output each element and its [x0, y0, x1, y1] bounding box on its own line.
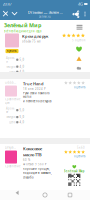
staticText: 5,0	[20, 108, 25, 112]
button[interactable]: Scan QR code	[63, 163, 86, 187]
staticText: Цена	[9, 70, 15, 73]
staticText: всё необходимое для сада	[4, 29, 41, 33]
staticText: оценить	[74, 154, 85, 158]
staticText: объём 75 мл	[22, 40, 41, 43]
staticText: Аромат	[6, 56, 15, 63]
button[interactable]: More	[81, 8, 89, 20]
button[interactable]: Recents	[65, 190, 75, 200]
staticText: 4G	[78, 1, 83, 7]
staticText: Цена	[9, 120, 15, 124]
staticText: Крем для рук	[22, 33, 48, 39]
staticText: Зелёный Мир	[64, 169, 85, 173]
button[interactable]: Home	[40, 190, 50, 200]
button[interactable]: Like	[76, 46, 82, 52]
staticText: 5,0	[20, 115, 25, 119]
staticText: оценить	[74, 85, 85, 89]
button[interactable]: Back	[15, 190, 25, 200]
button[interactable]: Close	[1, 8, 10, 20]
staticText: Отзывы — Зелён…	[27, 10, 62, 15]
staticText: urbbb…	[5, 81, 16, 84]
button[interactable]: Comment	[76, 65, 82, 71]
staticText: и нежнее после курса	[23, 99, 51, 103]
staticText: True Hand	[23, 81, 44, 86]
button[interactable]: Купить	[5, 49, 18, 53]
button[interactable]: Share	[71, 8, 81, 20]
staticText: 4,0	[20, 120, 25, 124]
staticText: Текстура	[6, 115, 15, 119]
staticText: спасибо	[23, 176, 34, 179]
staticText: LiVkjsh…	[5, 146, 16, 149]
staticText: Зелёный Мир	[4, 22, 41, 29]
staticText: 18 янв 2024 Р	[23, 87, 46, 91]
staticText: Руки стали намного мягче	[23, 91, 50, 99]
staticText: 5к 60	[77, 146, 85, 149]
staticText: масло ТТВ	[23, 152, 42, 157]
staticText: zelmir.ru	[39, 15, 51, 18]
staticText: 5,0	[20, 58, 25, 61]
staticText: 60 %	[23, 158, 30, 162]
staticText: 4,0	[20, 65, 25, 68]
staticText: Сравнение цен	[5, 97, 20, 105]
staticText: Кокосовое	[23, 146, 42, 151]
button[interactable]: Collapse	[10, 8, 19, 20]
button[interactable]: Menu	[74, 22, 85, 33]
button[interactable]: Report	[76, 56, 82, 61]
staticText: Купить	[7, 49, 17, 53]
staticText: Хороший продукт,	[23, 167, 50, 170]
staticText: Аромат	[6, 107, 15, 114]
staticText: Сравнение	[5, 164, 20, 168]
staticText: ✽ Отзыв 9 560 ₽	[23, 163, 47, 166]
staticText: 4,0	[20, 70, 25, 73]
staticText: 20:47	[2, 1, 11, 7]
staticText: Текстура	[6, 65, 15, 68]
staticText: 5 оценок	[72, 38, 85, 42]
staticText: подойдёт в магазин,	[23, 171, 52, 175]
